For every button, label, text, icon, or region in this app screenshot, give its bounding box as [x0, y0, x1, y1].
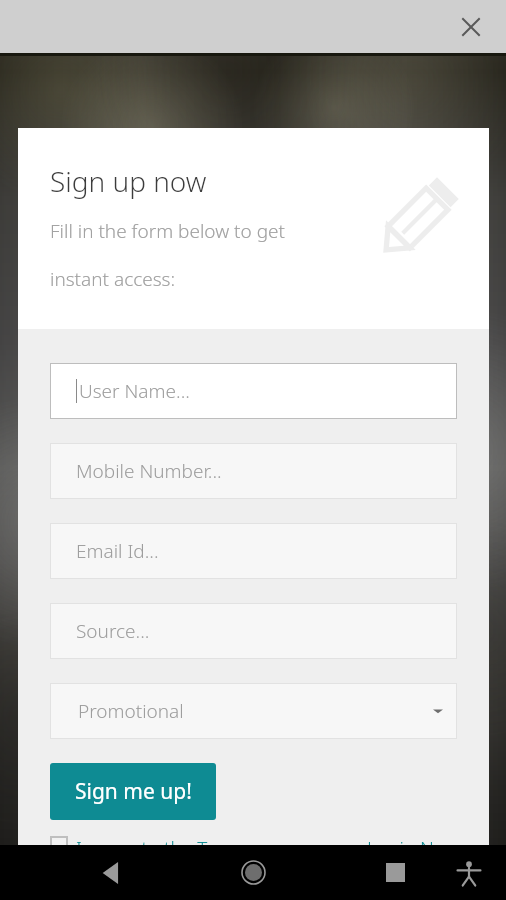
button[interactable]: Accessibility — [438, 845, 500, 900]
button[interactable]: Mobile Number... — [50, 443, 457, 499]
button[interactable]: Email Id... — [50, 523, 457, 579]
staticText: Fill in the form below to get — [50, 218, 286, 244]
button[interactable]: I agree to the Terms — [50, 835, 250, 861]
staticText: I agree to the Terms — [76, 835, 250, 861]
staticText: Login Now — [367, 835, 459, 861]
button[interactable]: Back — [48, 845, 174, 900]
button[interactable]: Recent apps — [345, 845, 445, 900]
button[interactable]: Close — [449, 5, 493, 49]
button[interactable]: Home — [198, 845, 308, 900]
staticText: Sign up now — [50, 162, 207, 200]
staticText: Email Id... — [76, 538, 159, 564]
staticText: instant access: — [50, 266, 176, 292]
button[interactable]: Sign me up! — [50, 763, 216, 820]
staticText: Mobile Number... — [76, 458, 222, 484]
staticText: Sign me up! — [75, 777, 192, 806]
staticText: User Name... — [79, 378, 190, 404]
staticText: Source... — [76, 618, 150, 644]
button[interactable]: Login Now — [367, 835, 459, 861]
button[interactable]: Source... — [50, 603, 457, 659]
button[interactable]: User Name... — [50, 363, 457, 419]
staticText: Promotional — [78, 698, 184, 724]
button[interactable]: Promotional — [50, 683, 457, 739]
